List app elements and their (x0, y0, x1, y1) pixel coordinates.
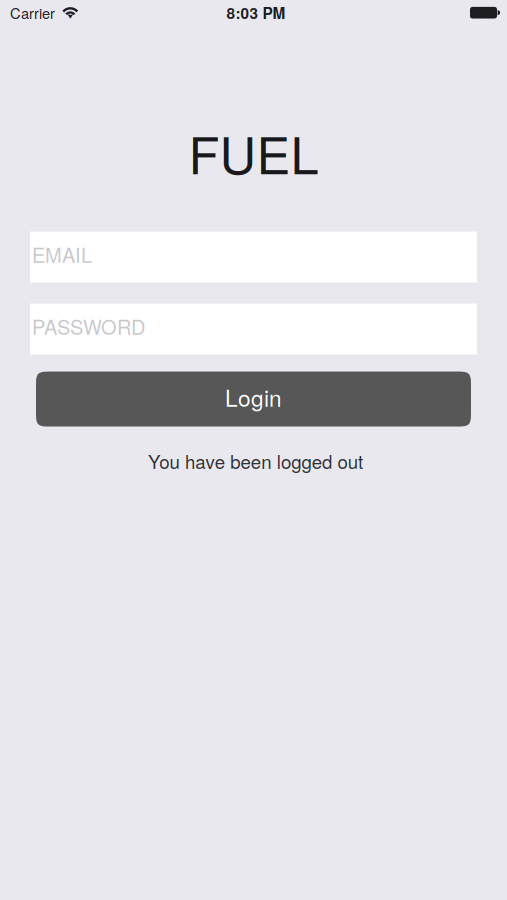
staticText: EMAIL (32, 240, 92, 268)
staticText: FUEL (188, 116, 318, 189)
staticText: 8:03 PM (226, 2, 285, 24)
staticText: Carrier (10, 2, 55, 23)
button[interactable]: PASSWORD (30, 304, 477, 355)
button[interactable]: EMAIL (30, 232, 477, 283)
staticText: PASSWORD (32, 312, 145, 340)
button[interactable]: Login (36, 372, 471, 427)
staticText: You have been logged out (148, 448, 363, 474)
staticText: Login (225, 381, 282, 413)
